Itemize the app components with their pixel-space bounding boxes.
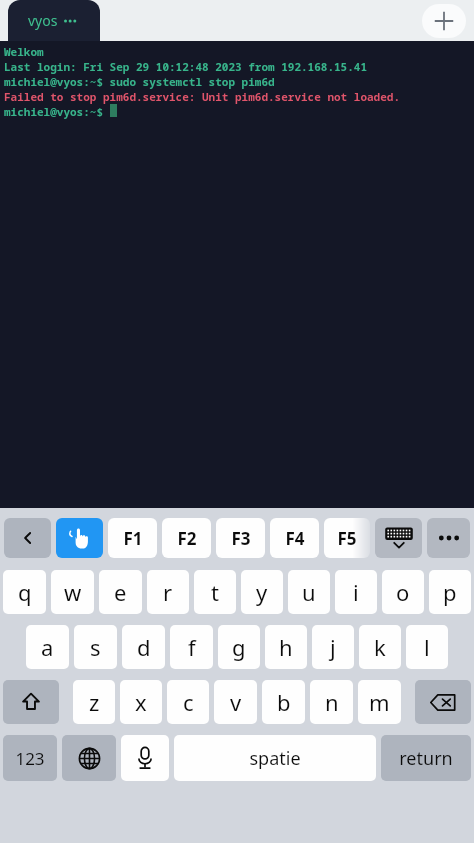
staticText: u — [302, 577, 316, 607]
button[interactable]: More — [427, 518, 470, 558]
staticText: d — [137, 632, 151, 662]
button[interactable]: u — [288, 570, 330, 614]
button[interactable]: k — [359, 625, 401, 669]
staticText: F2 — [177, 527, 197, 550]
staticText: F1 — [123, 527, 143, 550]
staticText: l — [424, 632, 430, 662]
staticText: b — [277, 687, 291, 717]
button[interactable]: Dictation — [121, 735, 169, 781]
staticText: c — [183, 687, 194, 717]
button[interactable]: F2 — [162, 518, 211, 558]
button[interactable]: v — [214, 680, 257, 724]
button[interactable]: p — [429, 570, 471, 614]
staticText: Last login: Fri Sep 29 10:12:48 2023 fro… — [4, 59, 367, 74]
staticText: spatie — [249, 746, 301, 771]
button[interactable]: return — [381, 735, 471, 781]
staticText: q — [18, 577, 32, 607]
staticText: a — [41, 632, 54, 662]
button[interactable]: q — [3, 570, 46, 614]
staticText: F3 — [231, 527, 251, 550]
staticText: r — [163, 577, 173, 607]
staticText: t — [211, 577, 219, 607]
button[interactable]: o — [382, 570, 424, 614]
button[interactable]: w — [51, 570, 94, 614]
staticText: F5 — [337, 527, 357, 550]
staticText: e — [114, 577, 127, 607]
button[interactable]: 123 — [3, 735, 57, 781]
button[interactable]: f — [170, 625, 213, 669]
staticText: m — [369, 687, 390, 717]
staticText: x — [135, 687, 147, 717]
button[interactable]: j — [312, 625, 354, 669]
button[interactable]: F4 — [270, 518, 319, 558]
button[interactable]: z — [73, 680, 115, 724]
button[interactable]: Back — [4, 518, 51, 558]
button[interactable]: b — [262, 680, 305, 724]
staticText: j — [330, 632, 336, 662]
staticText: F4 — [285, 527, 305, 550]
staticText: i — [353, 577, 359, 607]
staticText: w — [64, 577, 82, 607]
staticText: f — [188, 632, 196, 662]
staticText: y — [256, 577, 268, 607]
button[interactable]: s — [74, 625, 117, 669]
button[interactable]: Shift — [3, 680, 59, 724]
staticText: 123 — [15, 747, 45, 770]
button[interactable]: a — [26, 625, 69, 669]
button[interactable]: y — [241, 570, 283, 614]
button[interactable]: n — [310, 680, 353, 724]
staticText: Welkom — [4, 44, 44, 59]
button[interactable]: New tab — [422, 4, 466, 38]
staticText: o — [396, 577, 410, 607]
button[interactable]: h — [265, 625, 307, 669]
button[interactable]: c — [167, 680, 209, 724]
button[interactable]: x — [120, 680, 162, 724]
staticText: h — [279, 632, 293, 662]
staticText: Failed to stop pim6d.service: Unit pim6d… — [4, 89, 400, 104]
button[interactable]: d — [122, 625, 165, 669]
button[interactable]: Touch mode — [56, 518, 103, 558]
staticText: p — [443, 577, 457, 607]
staticText: michiel@vyos:~$ sudo systemctl stop pim6… — [4, 74, 275, 89]
staticText: s — [90, 632, 101, 662]
button[interactable]: t — [194, 570, 236, 614]
staticText: return — [399, 746, 453, 771]
staticText: k — [374, 632, 386, 662]
button[interactable]: Hide keyboard — [375, 518, 422, 558]
button[interactable]: r — [147, 570, 189, 614]
staticText: z — [89, 687, 100, 717]
staticText: g — [232, 632, 246, 662]
button[interactable]: m — [358, 680, 401, 724]
button[interactable]: Backspace — [415, 680, 471, 724]
button[interactable]: g — [218, 625, 260, 669]
staticText: vyos — [28, 11, 58, 30]
button[interactable]: Change language — [62, 735, 116, 781]
staticText: v — [230, 687, 242, 717]
button[interactable]: spatie — [174, 735, 376, 781]
button[interactable]: F3 — [216, 518, 265, 558]
staticText: n — [325, 687, 339, 717]
button[interactable]: F1 — [108, 518, 157, 558]
button[interactable]: l — [406, 625, 448, 669]
button[interactable]: e — [99, 570, 142, 614]
staticText: michiel@vyos:~$ — [4, 104, 110, 119]
button[interactable]: vyos — [8, 0, 100, 41]
button[interactable]: i — [335, 570, 377, 614]
button[interactable]: F5 — [324, 518, 370, 558]
